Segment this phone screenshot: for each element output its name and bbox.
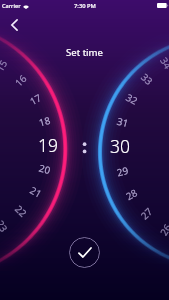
staticText: 29 [116,164,130,179]
staticText: 20 [37,162,52,177]
staticText: 7:30 PM [74,2,96,10]
staticText: 30 [110,134,130,158]
staticText: 17 [28,91,44,108]
staticText: 32 [124,91,140,108]
button[interactable]: Confirm [69,237,100,268]
staticText: 27 [138,205,156,222]
button[interactable]: Back [3,13,26,36]
staticText: Set time [66,46,103,59]
staticText: 23 [0,218,11,235]
staticText: 21 [28,184,44,201]
staticText: 26 [157,221,169,238]
staticText: 19 [38,133,58,157]
staticText: 28 [124,186,140,203]
staticText: 16 [12,72,30,89]
staticText: 18 [37,114,52,129]
staticText: 15 [0,57,11,74]
staticText: Carrier [2,2,21,10]
staticText: 31 [116,115,130,130]
staticText: 22 [12,203,30,220]
staticText: 34 [157,55,169,72]
staticText: 33 [138,71,156,88]
